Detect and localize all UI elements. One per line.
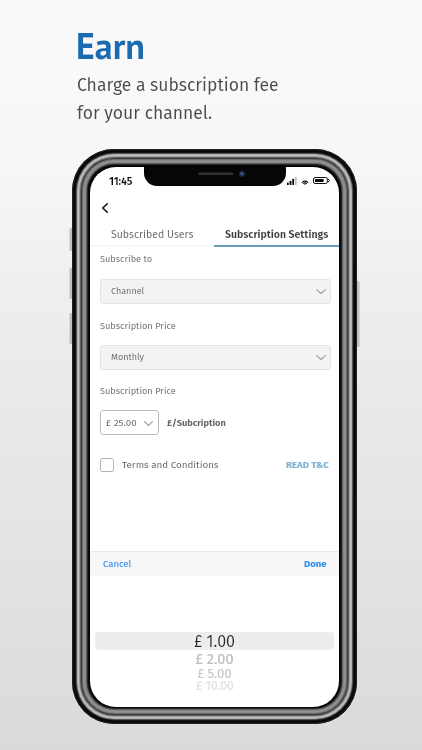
staticText: 11:45: [109, 175, 133, 188]
staticText: Earn: [76, 22, 145, 69]
staticText: Subscribe to: [100, 253, 153, 264]
button[interactable]: READ T&C: [276, 454, 339, 476]
button[interactable]: Subscription Settings: [214, 223, 339, 245]
staticText: £ 25.00: [106, 417, 137, 429]
button[interactable]: Cancel: [90, 553, 145, 574]
staticText: Cancel: [103, 558, 132, 569]
staticText: £ 2.00: [195, 650, 234, 666]
staticText: READ T&C: [286, 459, 329, 471]
button[interactable]: Done: [292, 553, 339, 574]
staticText: £/Subcription: [167, 417, 226, 428]
button[interactable]: Subscribed Users: [90, 223, 214, 245]
button[interactable]: Monthly: [100, 345, 331, 370]
staticText: Charge a subscription fee: [77, 75, 279, 96]
button[interactable]: Terms and Conditions: [90, 453, 219, 477]
staticText: Monthly: [111, 352, 145, 363]
staticText: Done: [304, 558, 327, 569]
staticText: £ 5.00: [197, 666, 232, 679]
staticText: £ 10.00: [196, 679, 234, 691]
button[interactable]: [95, 632, 334, 650]
button[interactable]: £ 25.00: [100, 410, 159, 435]
staticText: Subscribed Users: [111, 228, 194, 241]
staticText: Subscription Price: [100, 385, 176, 396]
staticText: Subscription Price: [100, 320, 176, 331]
button[interactable]: Channel: [100, 279, 331, 304]
staticText: Channel: [111, 286, 145, 297]
button[interactable]: Back: [91, 195, 119, 221]
staticText: £ 1.00: [194, 632, 235, 650]
staticText: for your channel.: [77, 103, 213, 124]
staticText: Subscription Settings: [225, 228, 329, 241]
staticText: Terms and Conditions: [122, 459, 219, 471]
